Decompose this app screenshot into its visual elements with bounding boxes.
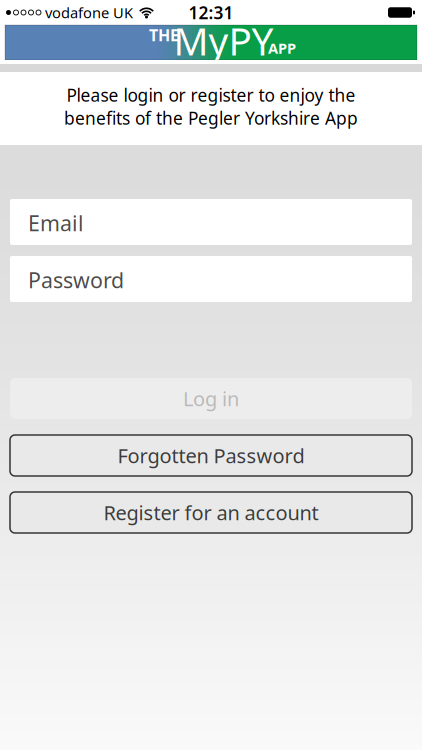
button[interactable]: Password [0,256,422,302]
staticText: APP [268,38,296,58]
staticText: benefits of the Pegler Yorkshire App [64,106,358,129]
button[interactable]: Email [0,199,422,245]
staticText: Please login or register to enjoy the [66,83,355,106]
staticText: THE [149,24,179,46]
staticText: Password [28,266,124,294]
staticText: Email [28,209,84,237]
staticText: Log in [183,385,239,412]
staticText: MyPY [173,15,273,66]
button[interactable]: Forgotten Password [0,435,422,476]
staticText: 12:31 [188,1,233,24]
button[interactable]: Log in [0,378,422,419]
button[interactable]: Register for an account [0,492,422,533]
staticText: Register for an account [103,499,318,526]
staticText: vodafone UK [45,3,133,22]
staticText: Forgotten Password [117,442,304,469]
